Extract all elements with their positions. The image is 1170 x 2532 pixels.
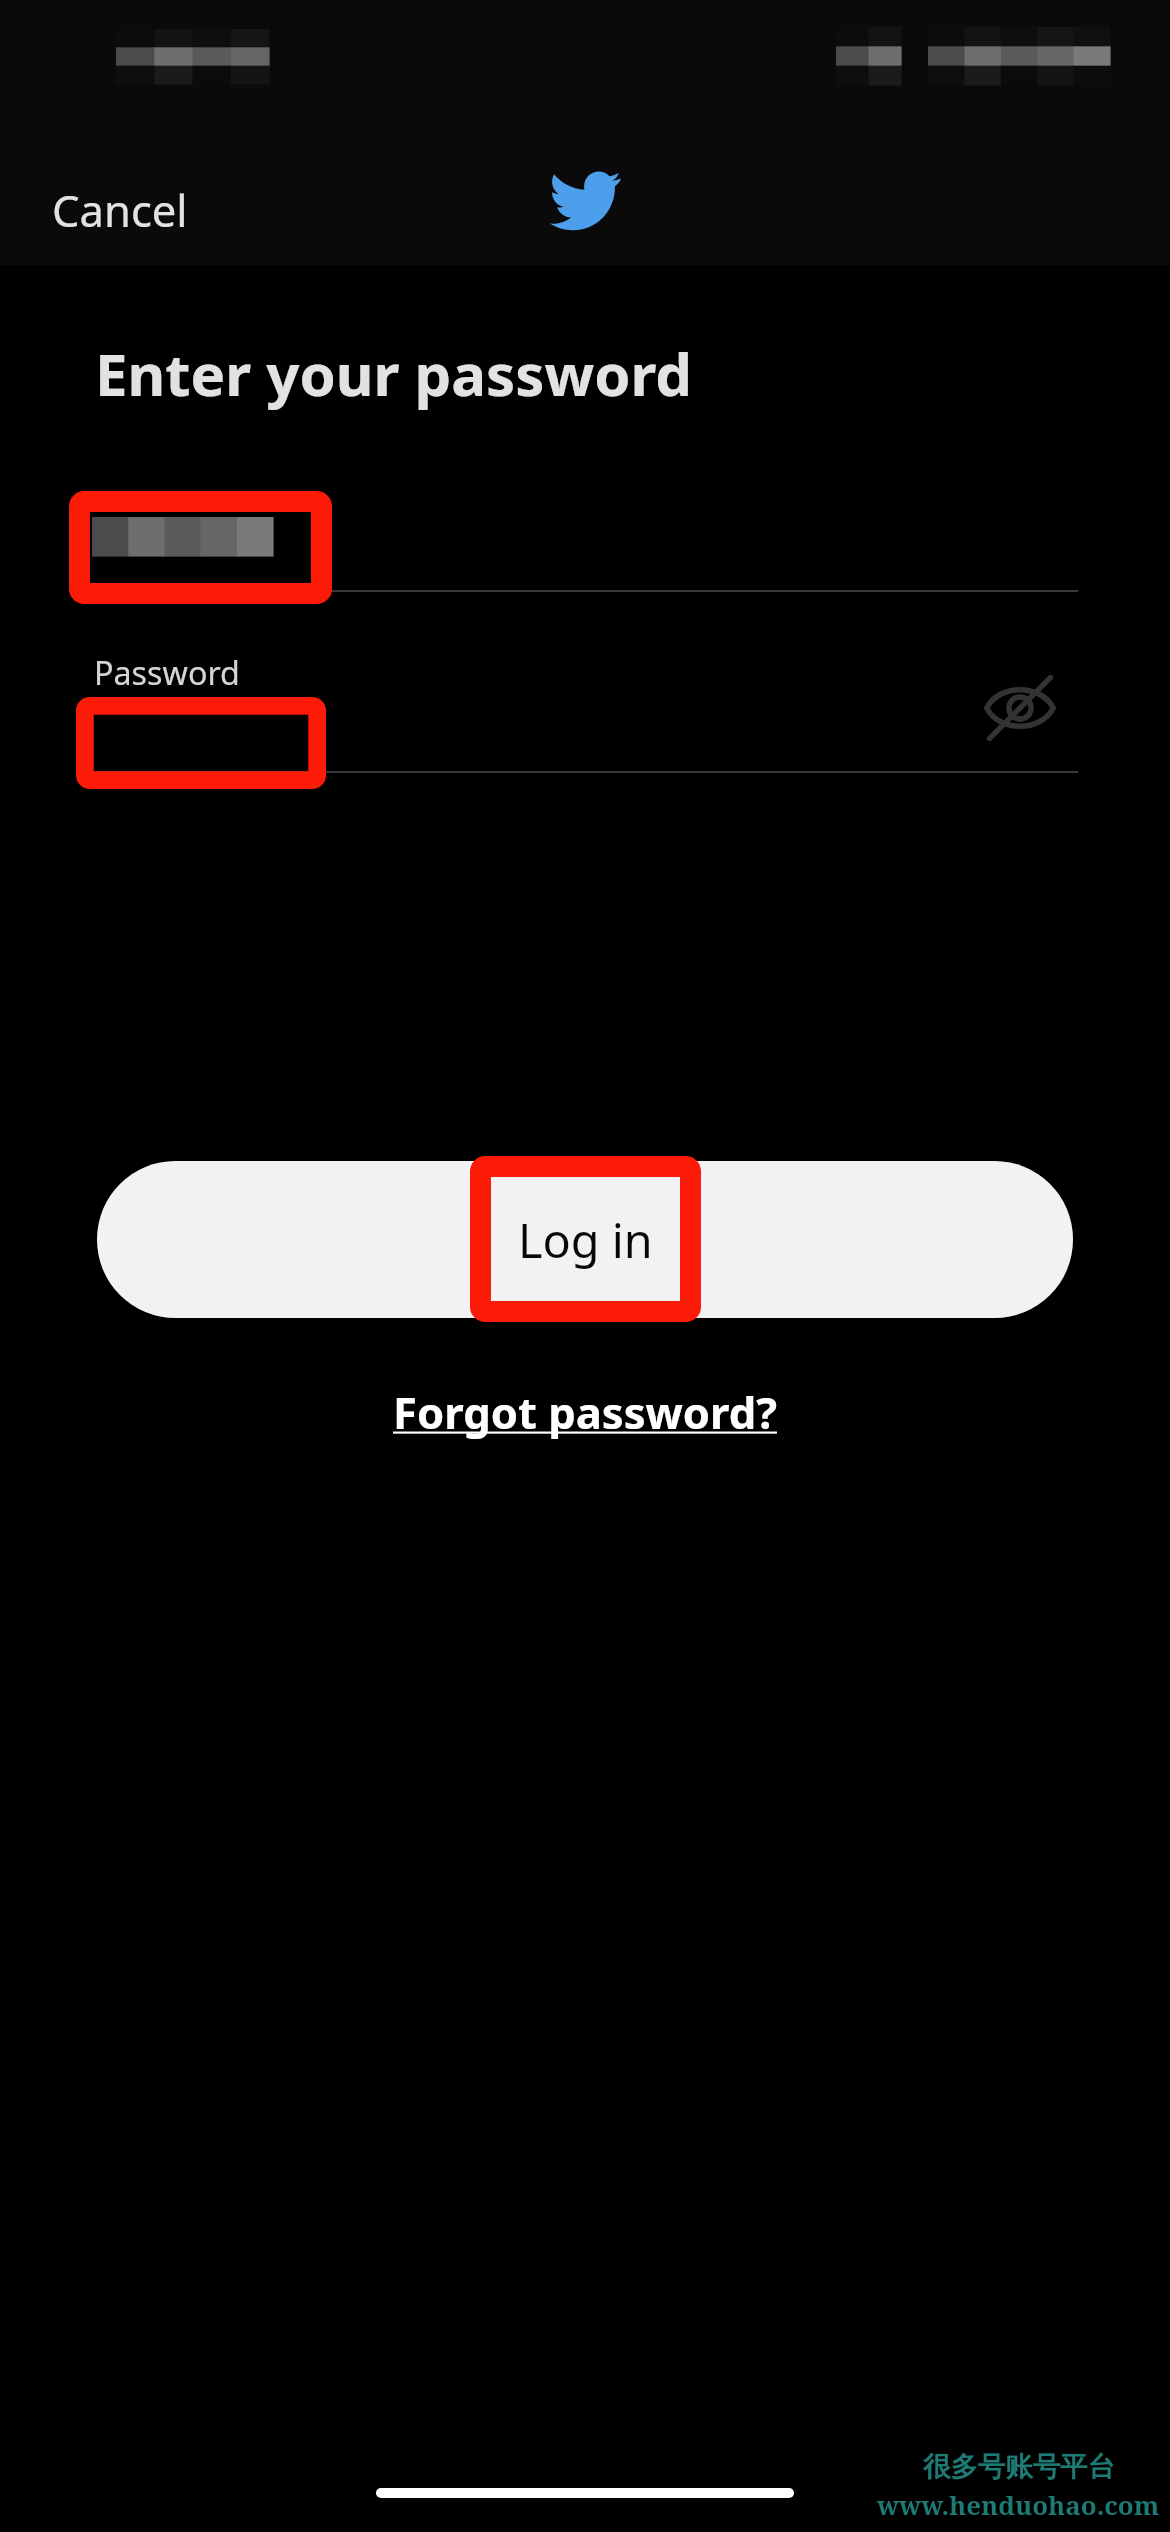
staticText: 很多号账号平台 [923, 2450, 1115, 2485]
staticText: Forgot password? [393, 1382, 777, 1441]
staticText: www.henduohao.com [877, 2487, 1160, 2522]
button[interactable]: Cancel [29, 167, 211, 252]
button[interactable]: Password [0, 650, 1170, 773]
button[interactable]: Hide password [975, 663, 1065, 753]
button[interactable] [0, 481, 1170, 592]
staticText: Cancel [52, 180, 188, 239]
button[interactable]: Twitter [550, 165, 621, 236]
staticText: Log in [518, 1208, 653, 1272]
button[interactable]: Forgot password? [377, 1372, 793, 1451]
button[interactable]: Log in [97, 1161, 1073, 1318]
staticText: Password [94, 650, 240, 694]
staticText: Enter your password [95, 334, 692, 413]
